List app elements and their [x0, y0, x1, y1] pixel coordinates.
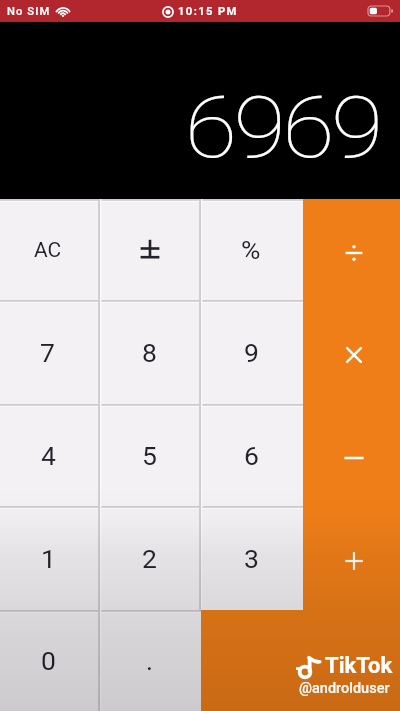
staticText: 10:15 PM	[178, 5, 238, 18]
button[interactable]: 9	[201, 300, 303, 404]
staticText: %	[241, 234, 261, 265]
staticText: @androlduser	[299, 680, 390, 697]
button[interactable]: Add	[303, 506, 400, 610]
button[interactable]: Multiply	[303, 300, 400, 404]
staticText: AC	[34, 238, 62, 263]
button[interactable]: Divide	[303, 199, 400, 300]
staticText: 0	[41, 645, 56, 676]
button[interactable]: %	[201, 199, 303, 300]
button[interactable]: 3	[201, 506, 303, 610]
staticText: 4	[41, 440, 56, 471]
button[interactable]: 5	[100, 404, 201, 506]
button[interactable]: Subtract	[303, 404, 400, 506]
button[interactable]: 6	[201, 404, 303, 506]
button[interactable]: 0	[0, 610, 100, 711]
staticText: 6969	[185, 79, 380, 178]
button[interactable]: .	[100, 610, 201, 711]
staticText: 5	[142, 440, 157, 471]
staticText: 8	[142, 337, 157, 368]
staticText: 9	[244, 337, 259, 368]
staticText: 2	[142, 543, 157, 574]
staticText: 1	[41, 543, 56, 574]
staticText: 7	[40, 337, 55, 368]
button[interactable]: 2	[100, 506, 201, 610]
staticText: 6	[244, 440, 259, 471]
staticText: .	[146, 645, 153, 676]
button[interactable]	[201, 610, 303, 711]
staticText: No SIM	[7, 5, 51, 18]
button[interactable]	[303, 610, 400, 711]
staticText: 3	[244, 543, 259, 574]
button[interactable]: Plus minus	[100, 199, 201, 300]
button[interactable]: 4	[0, 404, 100, 506]
button[interactable]: 8	[100, 300, 201, 404]
button[interactable]: AC	[0, 199, 100, 300]
button[interactable]: 1	[0, 506, 100, 610]
staticText: TikTok	[325, 653, 393, 679]
button[interactable]: 7	[0, 300, 100, 404]
